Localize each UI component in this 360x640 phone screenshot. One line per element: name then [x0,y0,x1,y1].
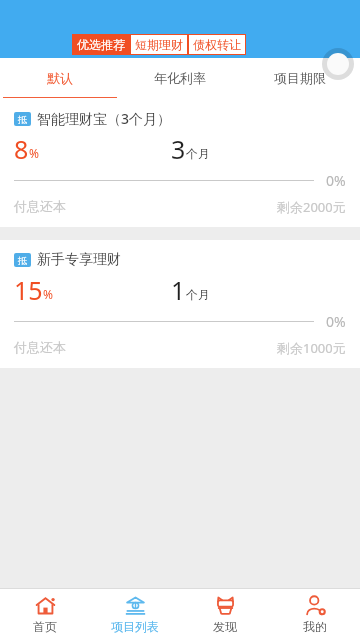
staticText: 新手专享理财 [37,251,121,269]
staticText: 发现 [213,619,237,634]
staticText: 1 [171,273,186,305]
staticText: 抵 [18,114,27,125]
button[interactable]: 短期理财 [130,34,188,55]
button[interactable]: 项目期限 [240,58,360,98]
button[interactable]: 抵 [0,98,360,227]
staticText: 默认 [47,70,73,86]
staticText: 项目列表 [111,619,159,634]
staticText: 个月 [186,287,210,302]
staticText: 智能理财宝（3个月） [37,109,172,128]
staticText: 个月 [186,146,210,161]
staticText: 剩余2000元 [277,198,346,216]
staticText: 0% [326,171,346,190]
other: 发现 [215,595,236,616]
staticText: 15 [14,273,43,305]
button[interactable]: 年化利率 [120,58,240,98]
staticText: 项目期限 [274,70,326,86]
staticText: 年化利率 [154,70,206,86]
button[interactable]: 债权转让 [188,34,246,55]
staticText: 优选推荐 [77,37,125,52]
other: 首页 [35,595,56,616]
staticText: 短期理财 [135,37,183,52]
staticText: 首页 [33,619,57,634]
staticText: 债权转让 [193,37,241,52]
button[interactable]: 我的 [270,589,360,640]
button[interactable]: 项目列表 [90,589,180,640]
button[interactable]: 默认 [0,58,120,98]
other: 项目列表 [125,595,146,616]
staticText: 剩余1000元 [277,339,346,357]
button[interactable]: 优选推荐 [72,34,130,55]
button[interactable]: 抵 [0,240,360,368]
staticText: % [29,145,39,161]
staticText: 0% [326,312,346,331]
other: 我的 [305,595,326,616]
staticText: % [43,286,53,302]
button[interactable]: 首页 [0,589,90,640]
staticText: 我的 [303,619,327,634]
staticText: 8 [14,132,29,164]
button[interactable]: 发现 [180,589,270,640]
staticText: 抵 [18,255,27,266]
staticText: 付息还本 [14,198,66,214]
staticText: 付息还本 [14,339,66,355]
staticText: 3 [171,132,186,164]
